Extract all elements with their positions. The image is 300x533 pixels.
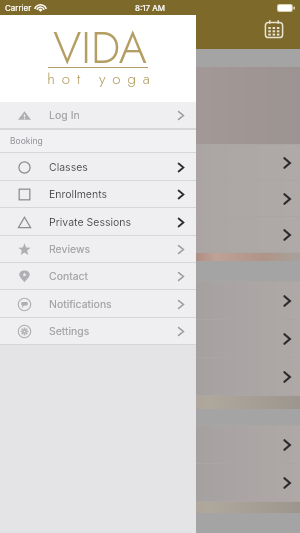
staticText: Contact xyxy=(49,270,88,283)
button[interactable] xyxy=(0,282,300,319)
button[interactable]: Notifications xyxy=(0,290,196,318)
button[interactable] xyxy=(0,320,300,357)
staticText: Enrollments xyxy=(49,188,108,201)
staticText: 8:17 AM xyxy=(135,3,166,13)
staticText: Carrier xyxy=(5,3,32,13)
staticText: Private Sessions xyxy=(49,216,132,229)
button[interactable]: Reviews xyxy=(0,236,196,263)
button[interactable] xyxy=(0,217,300,252)
button[interactable] xyxy=(0,464,300,501)
staticText: hot yoga xyxy=(4,68,200,90)
button[interactable] xyxy=(0,358,300,395)
staticText: Booking xyxy=(10,136,43,146)
button[interactable]: Calendar xyxy=(264,19,284,39)
button[interactable]: Contact xyxy=(0,263,196,290)
button[interactable] xyxy=(0,426,300,463)
staticText: Settings xyxy=(49,325,90,338)
staticText: VIDA xyxy=(2,16,198,80)
button[interactable]: Enrollments xyxy=(0,181,196,208)
button[interactable] xyxy=(0,181,300,216)
staticText: Notifications xyxy=(49,298,112,311)
staticText: Log In xyxy=(49,109,80,122)
button[interactable] xyxy=(0,145,300,180)
button[interactable]: Private Sessions xyxy=(0,208,196,236)
staticText: Reviews xyxy=(49,243,91,256)
staticText: Classes xyxy=(49,161,88,174)
button[interactable]: Settings xyxy=(0,318,196,345)
button[interactable]: Classes xyxy=(0,153,196,181)
button[interactable]: Log In xyxy=(0,102,196,129)
